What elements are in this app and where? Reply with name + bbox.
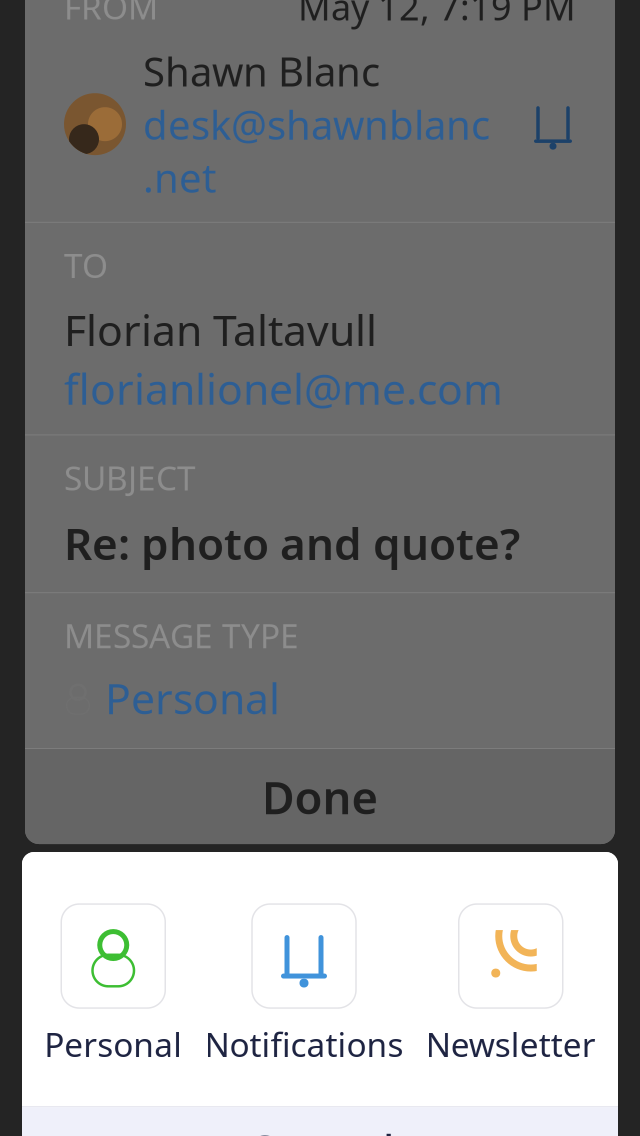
button[interactable]: Personal [44, 904, 182, 1066]
button[interactable]: Newsletter [426, 904, 596, 1066]
staticText: MESSAGE TYPE [64, 613, 299, 657]
button[interactable]: Cancel [22, 1107, 618, 1136]
button[interactable]: Personal [64, 657, 576, 748]
staticText: TO [64, 243, 108, 287]
button[interactable]: Done [25, 749, 615, 844]
staticText: May 12, 7:19 PM [298, 0, 576, 30]
staticText: Newsletter [426, 1022, 596, 1066]
staticText: Notifications [204, 1022, 403, 1066]
staticText: florianlionel@me.com [64, 360, 503, 416]
staticText: desk@shawnblanc.net [143, 98, 490, 204]
staticText: Personal [105, 669, 280, 726]
staticText: Shawn Blanc [143, 44, 380, 98]
button[interactable]: Notifications [530, 99, 576, 149]
staticText: Personal [44, 1022, 182, 1066]
staticText: FROM [64, 0, 158, 29]
staticText: Done [261, 766, 378, 827]
staticText: Cancel [245, 1119, 394, 1136]
staticText: Re: photo and quote? [64, 514, 520, 572]
staticText: Florian Taltavull [64, 301, 377, 358]
button[interactable]: Notifications [204, 904, 403, 1066]
staticText: SUBJECT [64, 455, 196, 500]
